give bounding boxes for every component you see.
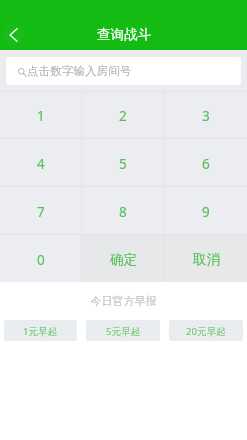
staticText: 查询战斗 bbox=[97, 26, 151, 43]
button[interactable]: 8 bbox=[82, 187, 164, 234]
button[interactable]: 6 bbox=[165, 139, 247, 186]
staticText: 5元早起 bbox=[106, 325, 141, 338]
button[interactable]: 1 bbox=[0, 92, 81, 138]
staticText: 1 bbox=[37, 107, 45, 125]
button[interactable]: 5元早起 bbox=[86, 320, 160, 341]
staticText: 9 bbox=[202, 203, 210, 221]
button[interactable]: 确定 bbox=[82, 235, 164, 282]
button[interactable]: 7 bbox=[0, 187, 81, 234]
staticText: 6 bbox=[202, 155, 210, 173]
button[interactable]: 20元早起 bbox=[169, 320, 243, 341]
staticText: 点击数字输入房间号 bbox=[27, 64, 132, 79]
button[interactable]: 取消 bbox=[165, 235, 247, 282]
button[interactable]: 9 bbox=[165, 187, 247, 234]
button[interactable]: 2 bbox=[82, 92, 164, 138]
staticText: 0 bbox=[37, 251, 45, 269]
button[interactable]: 1元早起 bbox=[4, 320, 77, 341]
button[interactable]: 4 bbox=[0, 139, 81, 186]
staticText: 今日官方早报 bbox=[0, 294, 247, 308]
staticText: 取消 bbox=[193, 251, 220, 268]
staticText: 2 bbox=[119, 107, 127, 125]
staticText: 5 bbox=[119, 155, 127, 173]
button[interactable]: Back bbox=[3, 24, 24, 45]
staticText: 确定 bbox=[110, 251, 137, 268]
staticText: 7 bbox=[37, 203, 45, 221]
button[interactable]: 5 bbox=[82, 139, 164, 186]
staticText: 8 bbox=[119, 203, 127, 221]
staticText: 20元早起 bbox=[186, 325, 226, 338]
button[interactable]: 3 bbox=[165, 92, 247, 138]
staticText: 4 bbox=[37, 155, 45, 173]
staticText: 1元早起 bbox=[23, 325, 58, 338]
button[interactable]: 点击数字输入房间号 bbox=[6, 57, 241, 85]
staticText: 3 bbox=[202, 107, 210, 125]
button[interactable]: 0 bbox=[0, 235, 81, 282]
